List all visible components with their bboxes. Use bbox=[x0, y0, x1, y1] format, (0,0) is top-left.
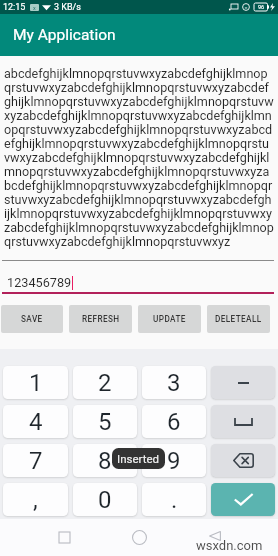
button[interactable]: 0 bbox=[73, 483, 137, 516]
button[interactable]: 3 bbox=[142, 366, 206, 399]
button[interactable]: . bbox=[142, 483, 206, 516]
staticText: , bbox=[33, 486, 38, 514]
staticText: UPDATE bbox=[153, 314, 186, 324]
button[interactable]: Home bbox=[121, 519, 157, 556]
staticText: 8 bbox=[98, 447, 112, 475]
staticText: . bbox=[171, 486, 178, 514]
button[interactable]: 6 bbox=[142, 405, 206, 438]
staticText: REFRESH bbox=[82, 314, 120, 324]
staticText: 3 KB/s bbox=[54, 2, 81, 13]
staticText: abcdefghijklmnopqrstuvwxyzabcdefghijklmn… bbox=[4, 66, 274, 249]
button[interactable]: Back bbox=[197, 517, 233, 554]
button[interactable]: SAVE bbox=[1, 305, 63, 333]
staticText: 9 bbox=[167, 447, 181, 475]
button[interactable]: , bbox=[3, 483, 68, 516]
staticText: My Application bbox=[13, 26, 116, 44]
button[interactable]: 2 bbox=[73, 366, 137, 399]
button[interactable]: 1 bbox=[3, 366, 68, 399]
staticText: 123456789 bbox=[7, 275, 72, 290]
staticText: 4 bbox=[29, 408, 43, 436]
button[interactable]: Recent apps bbox=[46, 519, 82, 556]
staticText: wsxdn.com bbox=[196, 538, 263, 553]
button[interactable]: UPDATE bbox=[138, 305, 201, 333]
button[interactable]: 4 bbox=[3, 405, 68, 438]
staticText: 6 bbox=[167, 408, 181, 436]
button[interactable]: space bbox=[211, 405, 275, 438]
button[interactable]: REFRESH bbox=[69, 305, 132, 333]
staticText: x bbox=[33, 5, 36, 11]
staticText: 96 bbox=[258, 4, 265, 10]
staticText: SAVE bbox=[21, 314, 43, 324]
staticText: 1 bbox=[29, 369, 43, 397]
button[interactable]: minus bbox=[211, 366, 275, 399]
staticText: 0 bbox=[98, 486, 112, 514]
staticText: 7 bbox=[29, 447, 43, 475]
button[interactable]: 8 bbox=[73, 444, 137, 477]
staticText: 3 bbox=[167, 369, 181, 397]
button[interactable]: backspace bbox=[211, 444, 275, 477]
button[interactable]: 5 bbox=[73, 405, 137, 438]
button[interactable]: DELETEALL bbox=[207, 305, 270, 333]
button[interactable]: enter bbox=[211, 483, 275, 516]
staticText: Inserted bbox=[117, 452, 160, 465]
button[interactable]: 9 bbox=[142, 444, 206, 477]
button[interactable]: 7 bbox=[3, 444, 68, 477]
staticText: 12:15 bbox=[3, 2, 26, 13]
staticText: DELETEALL bbox=[215, 314, 262, 324]
staticText: 2 bbox=[98, 369, 112, 397]
staticText: 5 bbox=[98, 408, 112, 436]
